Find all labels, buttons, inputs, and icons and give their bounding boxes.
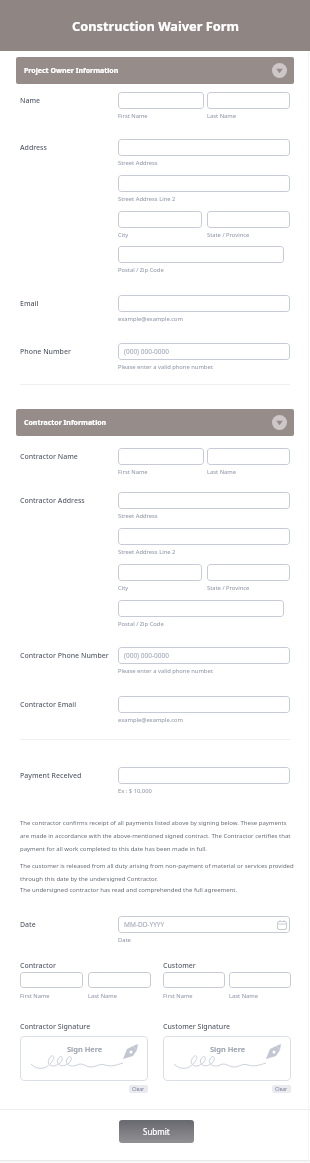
staticText: State / Province	[207, 584, 250, 592]
button[interactable]: Contractor Information	[16, 409, 294, 436]
staticText: payment for all work completed to this d…	[20, 845, 207, 853]
staticText: (000) 000-0000	[124, 347, 169, 356]
button[interactable]	[229, 972, 291, 988]
button[interactable]: MM-DD-YYYY	[118, 916, 290, 933]
staticText: The undersigned contractor has read and …	[20, 886, 238, 894]
staticText: City	[118, 584, 129, 592]
staticText: Date	[118, 936, 131, 944]
button[interactable]	[163, 972, 225, 988]
button[interactable]: Submit	[119, 1120, 194, 1143]
staticText: Sign Here	[67, 1044, 103, 1054]
button[interactable]	[88, 972, 151, 988]
staticText: Street Address Line 2	[118, 195, 176, 203]
button[interactable]	[118, 139, 290, 156]
staticText: Postal / Zip Code	[118, 620, 164, 628]
staticText: Contractor	[20, 961, 56, 971]
staticText: Customer Signature	[163, 1022, 231, 1032]
button[interactable]	[20, 972, 83, 988]
staticText: Date	[20, 920, 36, 930]
staticText: Last Name	[229, 992, 259, 1000]
staticText: First Name	[118, 468, 148, 476]
staticText: The contractor confirms receipt of all p…	[20, 819, 287, 827]
button[interactable]: (000) 000-0000	[118, 343, 290, 360]
staticText: Name	[20, 96, 41, 106]
staticText: First Name	[20, 992, 50, 1000]
staticText: Street Address	[118, 512, 158, 520]
button[interactable]	[118, 295, 290, 312]
staticText: First Name	[163, 992, 193, 1000]
button[interactable]	[207, 92, 290, 109]
button[interactable]	[118, 492, 290, 509]
staticText: Contractor Phone Number	[20, 651, 109, 661]
button[interactable]	[118, 767, 290, 784]
staticText: Address	[20, 143, 47, 153]
staticText: are made in accordance with the above-me…	[20, 832, 291, 840]
button[interactable]: Sign Here	[20, 1036, 148, 1081]
staticText: City	[118, 231, 129, 239]
staticText: Last Name	[88, 992, 118, 1000]
button[interactable]: Sign Here	[163, 1036, 291, 1081]
staticText: Contractor Address	[20, 496, 85, 506]
staticText: Contractor Signature	[20, 1022, 91, 1032]
staticText: (000) 000-0000	[124, 651, 169, 660]
button[interactable]	[118, 696, 290, 713]
staticText: Customer	[163, 961, 196, 971]
button[interactable]	[207, 448, 290, 465]
staticText: Construction Waiver Form	[72, 17, 239, 34]
staticText: Street Address	[118, 159, 158, 167]
staticText: Phone Number	[20, 347, 71, 357]
button[interactable]	[118, 600, 284, 617]
staticText: Please enter a valid phone number.	[118, 667, 214, 675]
staticText: State / Province	[207, 231, 250, 239]
button[interactable]	[207, 211, 290, 228]
staticText: Contractor Information	[24, 418, 107, 428]
button[interactable]	[118, 528, 290, 545]
button[interactable]: (000) 000-0000	[118, 647, 290, 664]
button[interactable]	[118, 448, 204, 465]
staticText: Payment Received	[20, 771, 82, 781]
button[interactable]	[118, 246, 284, 263]
staticText: through this date by the undersigned Con…	[20, 875, 158, 883]
button[interactable]: Project Owner Information	[16, 57, 294, 84]
staticText: Ex : $ 10,000	[118, 787, 152, 795]
button[interactable]	[118, 211, 202, 228]
staticText: The customer is released from all duty a…	[20, 862, 294, 870]
button[interactable]	[118, 175, 290, 192]
staticText: Project Owner Information	[24, 66, 119, 76]
button[interactable]: Clear	[272, 1085, 291, 1093]
staticText: First Name	[118, 112, 148, 120]
staticText: Sign Here	[210, 1044, 246, 1054]
staticText: Submit	[143, 1126, 170, 1137]
staticText: Street Address Line 2	[118, 548, 176, 556]
staticText: Postal / Zip Code	[118, 266, 164, 274]
staticText: Please enter a valid phone number.	[118, 363, 214, 371]
button[interactable]	[118, 564, 202, 581]
staticText: example@example.com	[118, 716, 183, 724]
staticText: Email	[20, 299, 39, 309]
staticText: Clear	[275, 1086, 288, 1093]
staticText: Contractor Name	[20, 452, 78, 462]
staticText: example@example.com	[118, 315, 183, 323]
button[interactable]	[207, 564, 290, 581]
button[interactable]	[118, 92, 204, 109]
staticText: Last Name	[207, 112, 237, 120]
staticText: Last Name	[207, 468, 237, 476]
button[interactable]: Clear	[129, 1085, 148, 1093]
staticText: Contractor Email	[20, 700, 77, 710]
staticText: Clear	[132, 1086, 145, 1093]
staticText: MM-DD-YYYY	[124, 920, 165, 929]
